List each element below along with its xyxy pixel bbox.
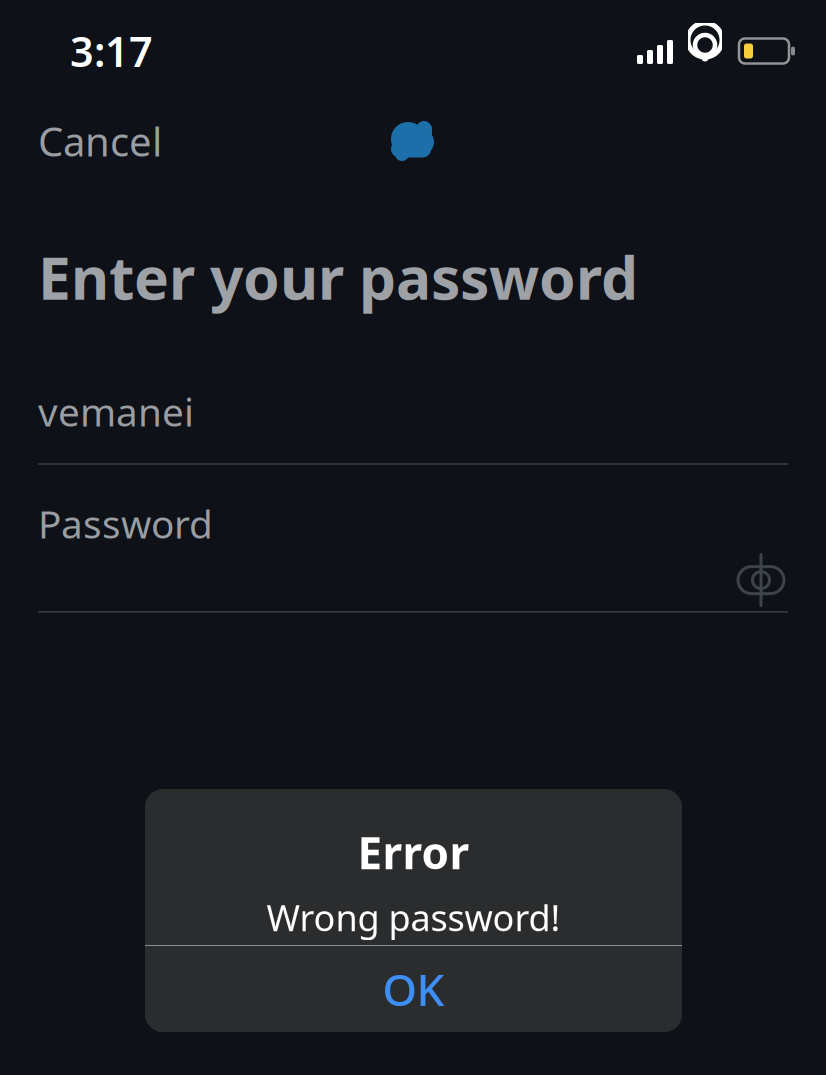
button[interactable]: Cancel bbox=[0, 104, 180, 177]
staticText: Enter your password bbox=[38, 238, 638, 316]
staticText: Wrong password! bbox=[266, 893, 560, 941]
staticText: vemanei bbox=[38, 386, 194, 437]
staticText: 3:17 bbox=[70, 24, 153, 78]
button[interactable]: OK bbox=[145, 946, 682, 1032]
staticText: Error bbox=[357, 823, 469, 881]
staticText: OK bbox=[382, 960, 444, 1018]
staticText: Password bbox=[38, 498, 213, 549]
staticText: Cancel bbox=[38, 114, 162, 167]
